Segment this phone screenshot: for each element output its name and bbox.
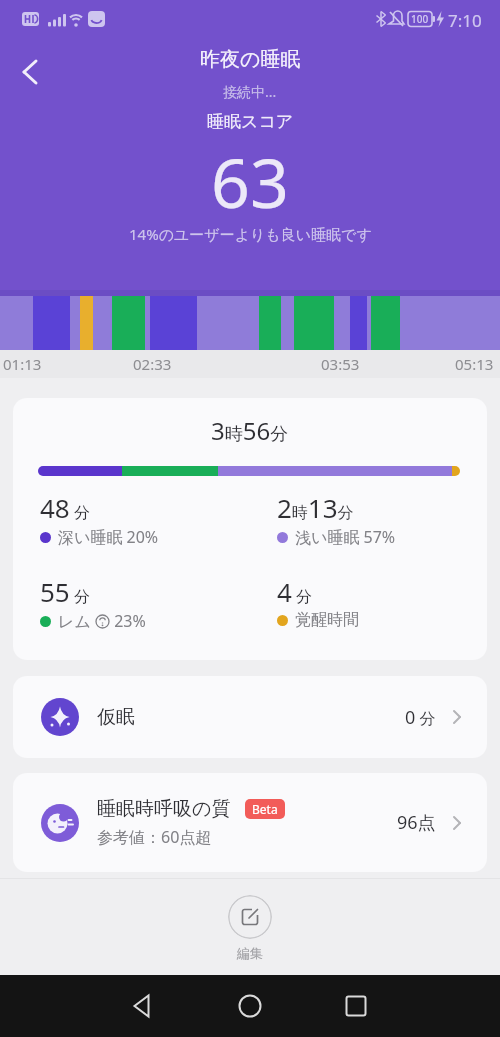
staticText: 深い睡眠 20%	[58, 526, 159, 548]
staticText: 仮眠	[97, 705, 135, 729]
button[interactable]	[228, 895, 272, 939]
staticText: 睡眠スコア	[207, 111, 294, 132]
staticText: 55 分	[40, 574, 90, 609]
staticText: 4 分	[277, 574, 313, 609]
staticText: 23%	[110, 610, 146, 632]
staticText: 05:13	[455, 354, 494, 374]
staticText: Beta	[252, 801, 278, 817]
staticText: 7:10	[448, 9, 482, 32]
staticText: 参考値：60点超	[97, 826, 212, 848]
staticText: レム	[58, 610, 95, 632]
staticText: 覚醒時間	[295, 610, 359, 630]
staticText: 接続中...	[223, 82, 277, 101]
button[interactable]	[332, 982, 380, 1030]
staticText: 14%のユーザーよりも良い睡眠です	[129, 224, 372, 244]
staticText: 96点	[397, 810, 436, 835]
staticText: 浅い睡眠 57%	[295, 526, 396, 548]
button[interactable]	[118, 982, 166, 1030]
staticText: 02:33	[133, 354, 172, 374]
staticText: 睡眠時呼吸の質	[97, 797, 231, 821]
staticText: 03:53	[321, 354, 360, 374]
button[interactable]: 睡眠時呼吸の質	[13, 773, 487, 872]
staticText: 48 分	[40, 490, 90, 525]
staticText: 3時56分	[211, 414, 289, 447]
staticText: 昨夜の睡眠	[200, 47, 301, 72]
staticText: 01:13	[3, 354, 42, 374]
staticText: 編集	[237, 945, 263, 961]
staticText: 100	[411, 12, 429, 26]
staticText: 63	[211, 135, 289, 228]
button[interactable]	[226, 982, 274, 1030]
button[interactable]	[8, 48, 52, 92]
staticText: 2時13分	[277, 490, 354, 525]
staticText: 0 分	[405, 705, 436, 730]
button[interactable]: 仮眠	[13, 676, 487, 758]
